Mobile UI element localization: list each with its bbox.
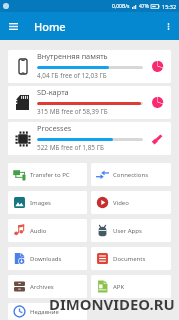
staticText: 4,04 ГБ free of 12,03 ГБ [37, 71, 107, 80]
staticText: 522 МБ free of 1,85 ГБ [37, 143, 104, 152]
button[interactable]: Archives [8, 275, 87, 298]
staticText: Transfer to PC [30, 171, 70, 179]
staticText: Documents [113, 255, 146, 263]
staticText: Downloads [30, 255, 62, 263]
staticText: Connections [113, 171, 149, 179]
button[interactable]: Connections [91, 163, 171, 186]
button[interactable]: SD-карта [8, 86, 171, 119]
button[interactable]: Audio [8, 219, 87, 242]
staticText: Processes [37, 123, 72, 133]
staticText: 47% [139, 3, 149, 10]
button[interactable]: Video [91, 191, 171, 214]
button[interactable]: Transfer to PC [8, 163, 87, 186]
staticText: APK [113, 283, 125, 291]
button[interactable]: More options [157, 15, 179, 37]
staticText: Archives [30, 283, 54, 291]
button[interactable]: Недавние [8, 303, 87, 320]
button[interactable]: Downloads [8, 247, 87, 270]
button[interactable]: Images [8, 191, 87, 214]
staticText: Video [113, 199, 129, 207]
staticText: 15:32 [162, 3, 177, 10]
button[interactable]: Open navigation menu [2, 15, 24, 37]
staticText: 315 MB free of 58,39 ГБ [37, 107, 108, 116]
staticText: Audio [30, 227, 47, 235]
staticText: DIMONVIDEO.RU [49, 294, 175, 314]
staticText: Home [34, 19, 66, 34]
staticText: Недавние [30, 308, 59, 316]
button[interactable]: User Apps [91, 219, 171, 242]
staticText: Images [30, 199, 51, 207]
staticText: SD-карта [37, 87, 69, 97]
button[interactable]: Внутренняя память [8, 50, 171, 83]
button[interactable]: APK [91, 275, 171, 298]
staticText: 0,00B/s [112, 3, 130, 10]
button[interactable]: Processes [8, 122, 171, 155]
staticText: Внутренняя память [37, 51, 108, 61]
staticText: User Apps [113, 227, 142, 235]
button[interactable]: Documents [91, 247, 171, 270]
